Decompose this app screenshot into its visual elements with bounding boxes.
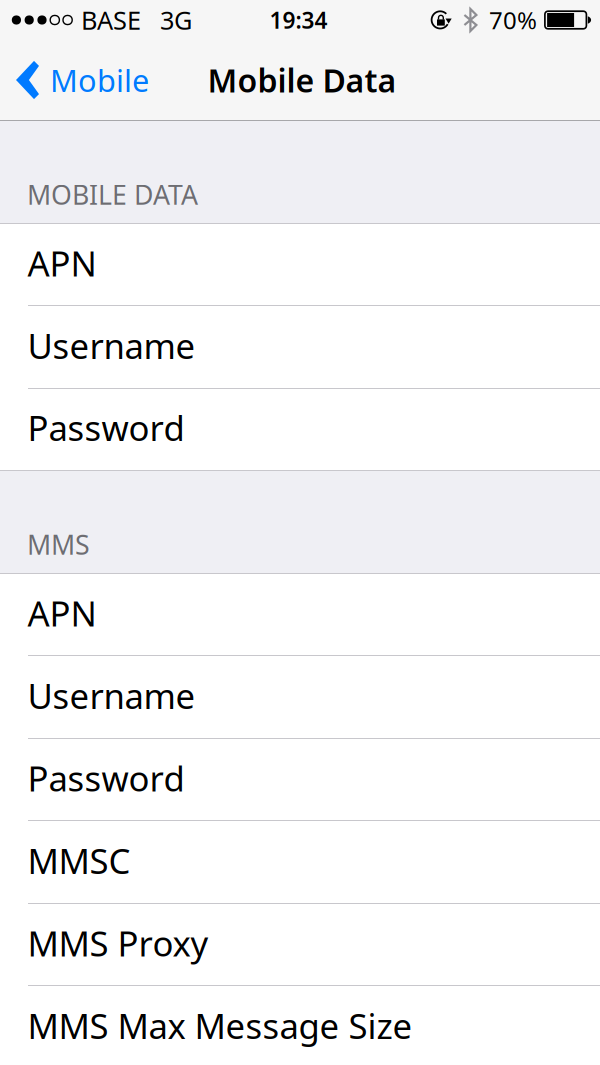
staticText: MOBILE DATA (27, 177, 198, 212)
staticText: Password (27, 755, 184, 801)
button[interactable]: MMS Max Message Size (0, 986, 600, 1065)
button[interactable]: APN (0, 224, 600, 306)
staticText: Mobile (50, 60, 149, 100)
button[interactable]: Username (0, 656, 600, 739)
staticText: MMS Max Message Size (27, 1002, 412, 1048)
button[interactable]: MMS Proxy (0, 904, 600, 986)
staticText: 70% (489, 4, 537, 36)
staticText: 19:34 (269, 5, 327, 35)
staticText: APN (27, 590, 96, 636)
staticText: APN (27, 240, 96, 286)
staticText: Mobile Data (207, 59, 396, 101)
staticText: BASE (81, 3, 141, 37)
button[interactable]: APN (0, 574, 600, 656)
staticText: MMSC (27, 837, 130, 883)
staticText: Username (27, 322, 195, 368)
staticText: MMS Proxy (27, 920, 208, 966)
staticText: Username (27, 672, 195, 718)
button[interactable]: Password (0, 389, 600, 470)
button[interactable]: MMSC (0, 821, 600, 904)
button[interactable]: Username (0, 306, 600, 389)
staticText: MMS (27, 527, 90, 562)
button[interactable]: Mobile (0, 40, 163, 120)
button[interactable]: Password (0, 739, 600, 821)
staticText: Password (27, 404, 184, 450)
staticText: 3G (160, 3, 192, 37)
